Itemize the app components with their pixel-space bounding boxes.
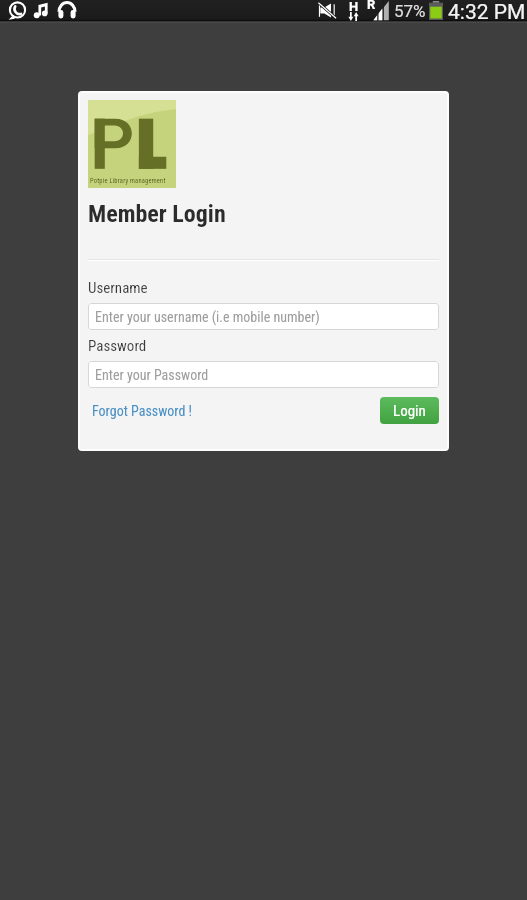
button[interactable]: Forgot Password ! xyxy=(88,401,193,421)
other: Silent mode xyxy=(318,3,339,18)
staticText: Username xyxy=(88,279,148,297)
staticText: 4:32 PM xyxy=(448,0,526,21)
staticText: Enter your username (i.e mobile number) xyxy=(95,309,320,325)
button[interactable]: Login xyxy=(380,397,439,424)
button[interactable]: Enter your username (i.e mobile number) xyxy=(88,303,439,330)
staticText: H xyxy=(349,0,359,14)
staticText: Login xyxy=(393,402,426,420)
button[interactable]: Enter your Password xyxy=(88,361,439,388)
staticText: Member Login xyxy=(88,200,226,228)
staticText: 57% xyxy=(394,1,426,21)
staticText: Potpie Library management xyxy=(90,177,166,185)
staticText: Password xyxy=(88,337,147,355)
staticText: Forgot Password ! xyxy=(92,403,193,419)
staticText: R xyxy=(367,0,376,12)
staticText: Enter your Password xyxy=(95,367,209,383)
